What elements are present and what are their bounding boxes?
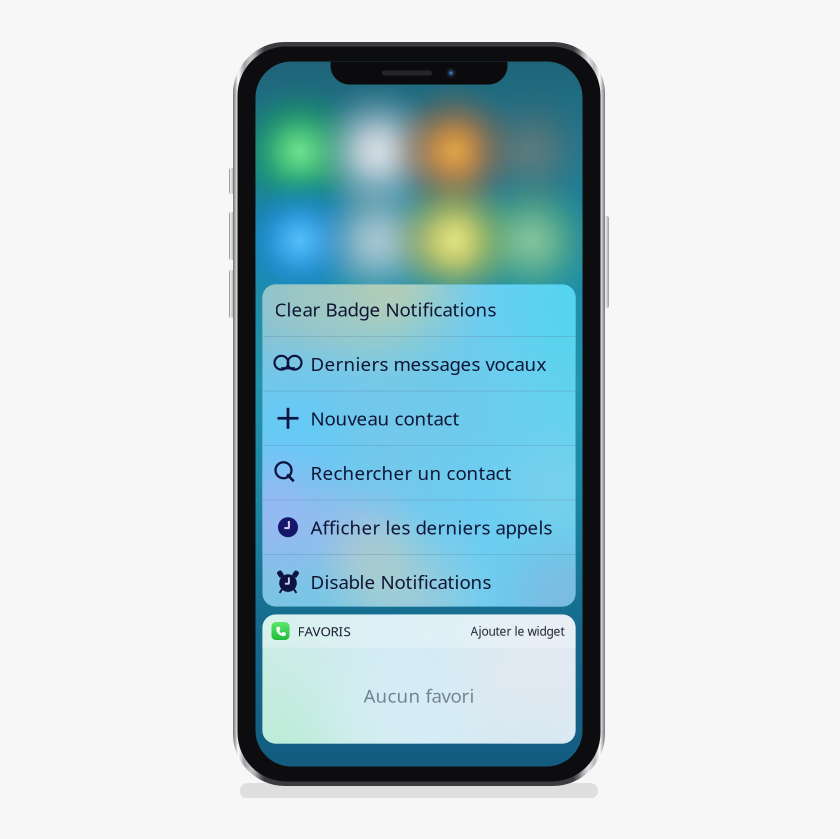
button[interactable]: Disable Notifications <box>262 555 575 609</box>
staticText: Derniers messages vocaux <box>310 351 546 376</box>
button[interactable]: Afficher les derniers appels <box>262 500 575 554</box>
staticText: Aucun favori <box>363 683 474 708</box>
button[interactable]: Derniers messages vocaux <box>262 337 575 391</box>
staticText: FAVORIS <box>297 622 350 640</box>
staticText: Ajouter le widget <box>470 623 564 639</box>
staticText: Nouveau contact <box>310 406 459 431</box>
staticText: Afficher les derniers appels <box>310 515 552 540</box>
staticText: Disable Notifications <box>310 569 491 594</box>
button[interactable]: Clear Badge Notifications <box>262 282 575 336</box>
staticText: Clear Badge Notifications <box>274 297 496 322</box>
button[interactable]: Ajouter le widget <box>470 618 564 644</box>
button[interactable]: Nouveau contact <box>262 391 575 445</box>
button[interactable]: Rechercher un contact <box>262 446 575 500</box>
staticText: Rechercher un contact <box>310 460 511 485</box>
